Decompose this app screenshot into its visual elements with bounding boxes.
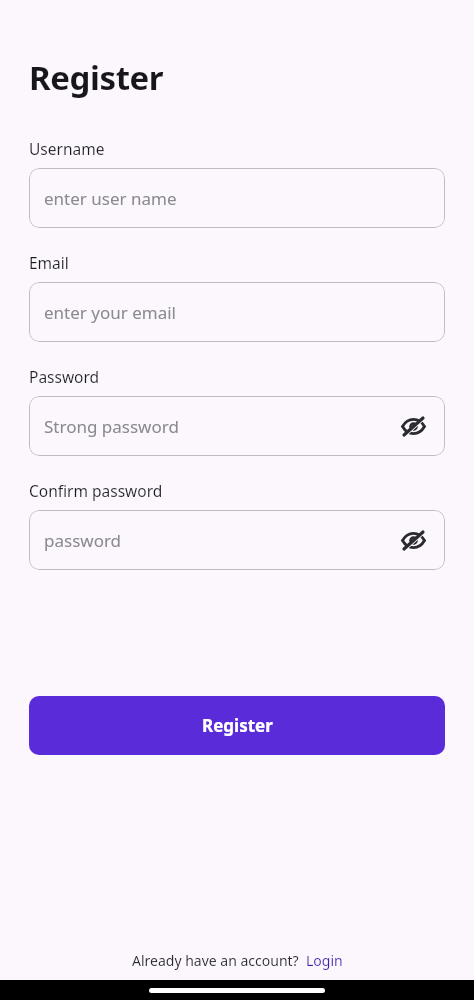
- staticText: Login: [306, 951, 343, 970]
- staticText: enter your email: [44, 301, 176, 324]
- button[interactable]: enter user name: [29, 168, 445, 228]
- staticText: Strong password: [44, 415, 179, 438]
- staticText: Already have an account?: [132, 951, 299, 970]
- staticText: Email: [29, 252, 69, 273]
- staticText: password: [44, 529, 122, 552]
- staticText: Register: [29, 55, 164, 100]
- button[interactable]: Toggle password visibility: [396, 409, 430, 443]
- staticText: Register: [202, 714, 273, 737]
- button[interactable]: Register: [29, 696, 445, 755]
- staticText: Username: [29, 138, 105, 159]
- button[interactable]: Toggle password visibility: [396, 523, 430, 557]
- staticText: Confirm password: [29, 480, 163, 501]
- button[interactable]: Strong password: [29, 396, 445, 456]
- button[interactable]: enter your email: [29, 282, 445, 342]
- staticText: Password: [29, 366, 100, 387]
- button[interactable]: Login: [306, 951, 343, 970]
- staticText: enter user name: [44, 187, 177, 210]
- button[interactable]: password: [29, 510, 445, 570]
